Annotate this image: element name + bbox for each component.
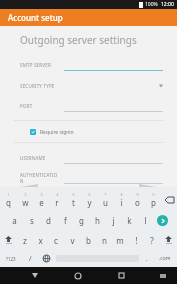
button[interactable]: Back (24, 267, 46, 284)
button[interactable]: f (57, 210, 73, 230)
staticText: USERNAME (20, 155, 60, 161)
staticText: 100% (145, 1, 158, 8)
button[interactable]: / (22, 250, 38, 267)
button[interactable]: Account setup (0, 9, 177, 26)
staticText: 9 (136, 192, 139, 197)
staticText: e (39, 197, 44, 208)
staticText: j (112, 215, 115, 226)
button[interactable]: Shift (0, 230, 17, 250)
button[interactable]: Enter (153, 210, 171, 230)
button[interactable]: Shift (160, 230, 177, 250)
staticText: 4 (56, 192, 59, 197)
staticText: SECURITY TYPE (20, 83, 60, 89)
button[interactable]: m (112, 230, 128, 250)
staticText: b (86, 235, 91, 246)
button[interactable]: ? (144, 230, 160, 250)
button[interactable]: j (105, 210, 121, 230)
button[interactable]: Require signin (0, 127, 177, 137)
staticText: l (144, 215, 147, 226)
staticText: y (87, 197, 92, 208)
staticText: q (6, 197, 11, 208)
staticText: 2 (24, 192, 27, 197)
staticText: z (23, 235, 27, 246)
staticText: / (29, 254, 32, 264)
staticText: h (95, 215, 100, 226)
staticText: 7 (104, 192, 107, 197)
button[interactable]: PORT (0, 99, 177, 112)
staticText: Require signin (40, 129, 74, 136)
staticText: r (55, 197, 59, 208)
button[interactable]: c (48, 230, 64, 250)
button[interactable]: USERNAME (0, 151, 177, 164)
button[interactable]: n (96, 230, 112, 250)
staticText: m (116, 235, 124, 246)
staticText: 5 (72, 192, 75, 197)
button[interactable]: Next (137, 184, 159, 187)
staticText: o (135, 197, 140, 208)
button[interactable]: d (40, 210, 57, 230)
button[interactable]: ! (128, 230, 144, 250)
staticText: a (12, 215, 17, 226)
button[interactable]: 3 (33, 190, 49, 210)
button[interactable]: Previous (18, 184, 40, 187)
button[interactable]: .com (153, 250, 177, 267)
staticText: SMTP SERVER (20, 62, 60, 68)
button[interactable]: AUTHENTICATION (0, 171, 177, 184)
button[interactable]: k (121, 210, 137, 230)
staticText: .com (159, 255, 171, 262)
button[interactable]: 6 (81, 190, 97, 210)
button[interactable]: 1 (0, 190, 17, 210)
button[interactable]: ?123 (0, 250, 22, 267)
staticText: u (103, 197, 108, 208)
staticText: ? (150, 235, 154, 246)
button[interactable]: Change language (38, 250, 54, 267)
button[interactable]: a (6, 210, 23, 230)
button[interactable]: Backspace (161, 190, 177, 210)
staticText: p (151, 197, 156, 208)
staticText: k (127, 215, 132, 226)
button[interactable]: x (32, 230, 48, 250)
button[interactable]: Home (67, 267, 89, 284)
staticText: x (38, 235, 43, 246)
staticText: c (54, 235, 58, 246)
staticText: d (46, 215, 51, 226)
button[interactable]: 8 (113, 190, 129, 210)
button[interactable]: SECURITY TYPE (0, 79, 177, 92)
button[interactable]: 7 (97, 190, 113, 210)
button[interactable]: b (80, 230, 96, 250)
staticText: t (72, 197, 75, 208)
button[interactable]: l (137, 210, 153, 230)
staticText: 6 (88, 192, 91, 197)
staticText: 3 (40, 192, 43, 197)
button[interactable]: Keyboard (153, 267, 173, 284)
button[interactable]: 9 (129, 190, 145, 210)
button[interactable]: 2 (17, 190, 33, 210)
staticText: g (79, 215, 84, 226)
button[interactable]: 4 (49, 190, 65, 210)
staticText: Outgoing server settings (20, 33, 137, 47)
button[interactable]: 5 (65, 190, 81, 210)
staticText: 8 (120, 192, 123, 197)
staticText: w (22, 197, 29, 208)
staticText: ! (135, 235, 138, 246)
staticText: i (120, 197, 123, 208)
staticText: 12:00 (161, 1, 174, 8)
staticText: v (70, 235, 75, 246)
button[interactable]: , (141, 250, 153, 267)
staticText: , (146, 255, 148, 263)
button[interactable]: g (73, 210, 89, 230)
button[interactable]: z (17, 230, 32, 250)
button[interactable]: 0 (145, 190, 161, 210)
staticText: s (30, 215, 34, 226)
button[interactable]: v (64, 230, 80, 250)
staticText: 1 (7, 192, 10, 197)
button[interactable]: Recents (110, 267, 132, 284)
staticText: ?123 (6, 256, 16, 262)
button[interactable]: SMTP SERVER (0, 58, 177, 71)
staticText: f (64, 215, 67, 226)
staticText: n (102, 235, 107, 246)
staticText: PORT (20, 103, 60, 109)
button[interactable]: s (23, 210, 40, 230)
button[interactable]: h (89, 210, 105, 230)
